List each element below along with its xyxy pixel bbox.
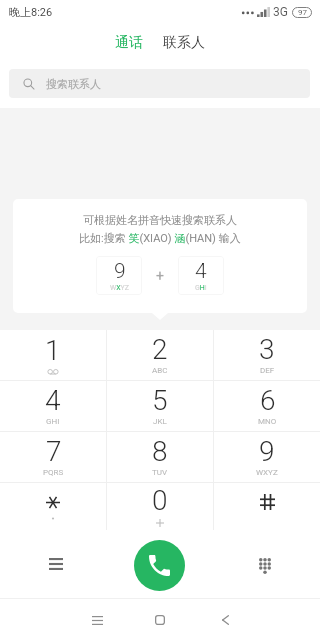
button[interactable] (0, 483, 106, 530)
staticText: 可根据姓名拼音快速搜索联系人 (83, 213, 237, 227)
button[interactable]: 0 (107, 483, 213, 530)
button[interactable]: 1 (0, 330, 106, 380)
button[interactable]: Back (207, 602, 243, 638)
button[interactable]: 9 (214, 432, 320, 482)
staticText: 6 (260, 384, 276, 417)
button[interactable]: 搜索联系人 (9, 69, 310, 98)
staticText: 9 (259, 435, 275, 468)
button[interactable]: 3 (214, 330, 320, 380)
staticText: TUV (152, 468, 168, 477)
staticText: GHI (46, 417, 60, 426)
button[interactable]: 4 (178, 256, 224, 295)
staticText: 0 (152, 484, 168, 517)
staticText: 4 (195, 259, 207, 284)
staticText: 比如:搜索 笑(XIAO) 涵(HAN) 输入 (79, 231, 241, 245)
staticText: ABC (152, 366, 168, 375)
button[interactable]: 4 (0, 381, 106, 431)
staticText: MNO (258, 417, 277, 426)
button[interactable]: Dialpad (242, 543, 288, 589)
button[interactable]: Home (142, 602, 178, 638)
staticText: DEF (260, 366, 275, 375)
button[interactable]: 9 (96, 256, 142, 295)
staticText: 搜索联系人 (46, 77, 101, 91)
staticText: 1 (45, 334, 61, 367)
staticText: 8 (152, 435, 168, 468)
button[interactable]: 8 (107, 432, 213, 482)
staticText: 通话 (115, 34, 143, 52)
staticText: + (156, 268, 164, 284)
staticText: WXYZ (110, 284, 129, 292)
staticText: 4 (45, 384, 61, 417)
button[interactable] (214, 483, 320, 530)
staticText: 5 (152, 384, 168, 417)
staticText: GHI (195, 284, 207, 292)
staticText: 7 (46, 435, 62, 468)
staticText: 9 (114, 259, 126, 284)
staticText: WXYZ (256, 468, 278, 477)
staticText: 2 (152, 333, 168, 366)
button[interactable]: 6 (214, 381, 320, 431)
button[interactable]: Recent apps (79, 602, 115, 638)
staticText: 97 (298, 8, 307, 17)
button[interactable]: 联系人 (153, 28, 215, 58)
staticText: 3G (273, 5, 288, 19)
staticText: PQRS (43, 468, 64, 477)
staticText: JKL (153, 417, 167, 426)
staticText: 3 (259, 333, 275, 366)
staticText: 晚上8:26 (9, 5, 53, 19)
button[interactable]: Call log (33, 541, 79, 587)
button[interactable]: 2 (107, 330, 213, 380)
button[interactable]: 7 (0, 432, 106, 482)
button[interactable]: 5 (107, 381, 213, 431)
button[interactable]: Call (134, 540, 185, 591)
staticText: 联系人 (163, 34, 205, 52)
button[interactable]: 通话 (105, 28, 153, 58)
